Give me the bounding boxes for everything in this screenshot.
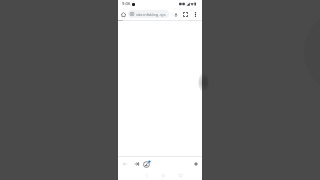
button[interactable]: site.infoblog <box>128 10 169 18</box>
button[interactable]: Scan <box>181 10 190 19</box>
button[interactable]: Switch tabs <box>142 159 152 169</box>
button[interactable]: Voice search <box>171 10 180 19</box>
button[interactable]: Back <box>120 159 129 168</box>
button[interactable]: More options <box>191 10 200 19</box>
staticText: site.infoblog <box>136 12 159 17</box>
button[interactable]: Forward <box>132 159 141 168</box>
button[interactable]: New tab <box>191 159 200 168</box>
button[interactable]: Recent apps <box>176 171 185 180</box>
button[interactable]: Home <box>119 10 128 19</box>
staticText: 9:06 <box>122 1 131 7</box>
button[interactable]: Home <box>159 171 168 180</box>
staticText: .sys <box>159 12 166 17</box>
